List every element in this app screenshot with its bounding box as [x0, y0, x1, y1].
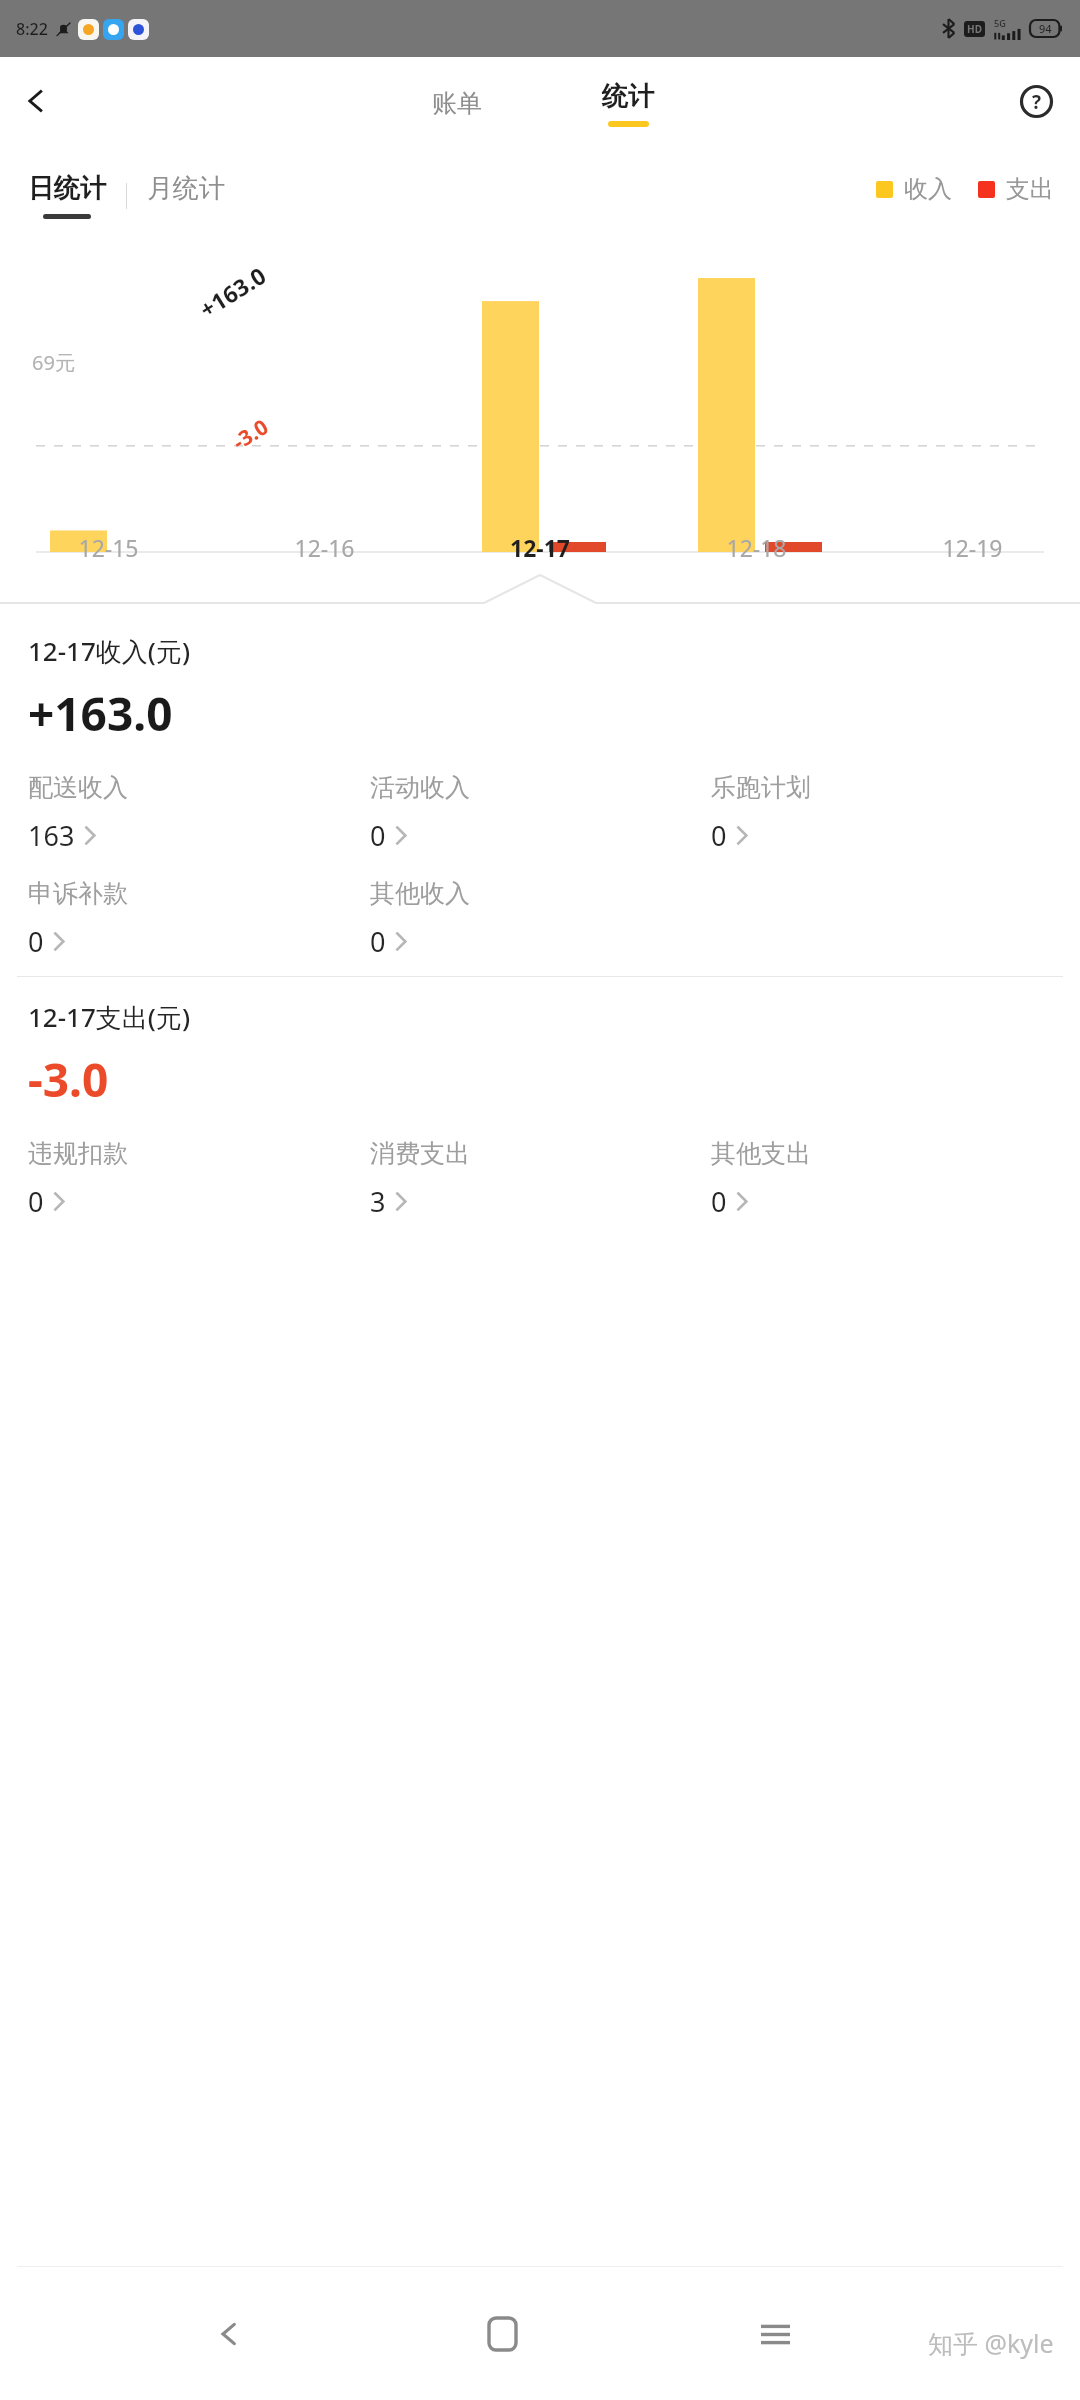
staticText: 申诉补款 — [28, 878, 128, 909]
staticText: 0 — [370, 923, 386, 960]
staticText: 日统计 — [28, 172, 106, 205]
button[interactable]: 违规扣款 — [28, 1138, 370, 1220]
button[interactable]: 12-16 — [216, 532, 432, 563]
button[interactable]: 12-19 — [864, 532, 1080, 563]
button[interactable]: Home — [459, 2291, 545, 2377]
staticText: 消费支出 — [370, 1138, 470, 1169]
button[interactable]: 月统计 — [147, 179, 225, 212]
staticText: 5G — [994, 17, 1006, 29]
staticText: 0 — [711, 1183, 727, 1220]
button[interactable]: Back — [186, 2291, 272, 2377]
staticText: 12-16 — [294, 532, 355, 563]
staticText: 其他收入 — [370, 878, 470, 909]
staticText: 69元 — [32, 349, 75, 376]
staticText: 活动收入 — [370, 772, 470, 803]
staticText: 163 — [28, 817, 75, 854]
staticText: -3.0 — [227, 412, 274, 457]
staticText: 12-19 — [942, 532, 1003, 563]
staticText: 0 — [28, 923, 44, 960]
button[interactable]: 日统计 — [28, 172, 106, 219]
button[interactable]: Recent apps — [732, 2291, 818, 2377]
button[interactable]: 其他收入 — [370, 878, 711, 960]
staticText: 12-15 — [78, 532, 139, 563]
staticText: 收入 — [904, 174, 952, 204]
staticText: 8:22 — [16, 18, 48, 40]
button[interactable]: 乐跑计划 — [711, 772, 1052, 854]
staticText: 统计 — [602, 80, 654, 113]
button[interactable]: 12-15 — [0, 532, 216, 563]
button[interactable]: Back — [8, 73, 64, 129]
button[interactable]: Help — [1008, 73, 1064, 129]
button[interactable]: 其他支出 — [711, 1138, 1052, 1220]
button[interactable]: 统计 — [584, 80, 672, 127]
staticText: ? — [1032, 89, 1042, 115]
staticText: 0 — [711, 817, 727, 854]
button[interactable]: 12-17 — [432, 532, 648, 563]
staticText: +163.0 — [28, 682, 173, 745]
staticText: 0 — [28, 1183, 44, 1220]
staticText: 其他支出 — [711, 1138, 811, 1169]
staticText: 配送收入 — [28, 772, 128, 803]
staticText: 0 — [370, 817, 386, 854]
staticText: 乐跑计划 — [711, 772, 811, 803]
button[interactable]: 12-18 — [648, 532, 864, 563]
button[interactable]: 申诉补款 — [28, 878, 370, 960]
staticText: HD — [967, 22, 982, 36]
staticText: 12-17 — [510, 532, 570, 563]
button[interactable]: 活动收入 — [370, 772, 711, 854]
staticText: 94 — [1039, 21, 1052, 36]
staticText: 账单 — [432, 88, 482, 119]
staticText: 12-18 — [726, 532, 787, 563]
staticText: +163.0 — [193, 259, 272, 324]
button[interactable]: 账单 — [408, 80, 506, 127]
button[interactable]: 消费支出 — [370, 1138, 711, 1220]
staticText: -3.0 — [28, 1048, 109, 1111]
staticText: 支出 — [1006, 174, 1054, 204]
staticText: 3 — [370, 1183, 386, 1220]
staticText: 知乎 @kyle — [928, 2326, 1054, 2360]
staticText: 月统计 — [147, 172, 225, 205]
staticText: 12-17支出(元) — [28, 999, 191, 1035]
staticText: 12-17收入(元) — [28, 633, 191, 669]
button[interactable]: 配送收入 — [28, 772, 370, 854]
staticText: 违规扣款 — [28, 1138, 128, 1169]
